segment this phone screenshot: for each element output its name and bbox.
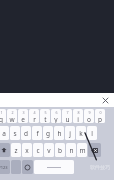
staticText: f <box>36 129 39 138</box>
staticText: h <box>57 129 62 138</box>
button[interactable]: ?123 <box>0 160 10 174</box>
staticText: 8 <box>77 110 80 115</box>
button[interactable]: Space <box>34 160 74 174</box>
button[interactable]: n <box>66 143 76 157</box>
staticText: j <box>69 129 71 138</box>
staticText: 4 <box>33 110 36 115</box>
button[interactable]: 8 <box>73 109 83 123</box>
staticText: q <box>0 115 3 123</box>
staticText: c <box>36 146 40 155</box>
button[interactable]: Backspace <box>88 143 101 157</box>
staticText: o <box>87 115 91 123</box>
staticText: m <box>79 146 86 155</box>
button[interactable]: Shift <box>0 143 10 157</box>
button[interactable]: l <box>87 126 97 140</box>
button[interactable]: 6 <box>51 109 61 123</box>
button[interactable]: b <box>55 143 65 157</box>
staticText: s <box>13 129 17 138</box>
button[interactable]: Close <box>100 95 111 106</box>
button[interactable]: z <box>11 143 21 157</box>
staticText: r <box>33 115 36 123</box>
button[interactable]: m <box>77 143 87 157</box>
staticText: a <box>2 129 6 138</box>
button[interactable]: d <box>21 126 31 140</box>
button[interactable]: k <box>76 126 86 140</box>
staticText: 6 <box>55 110 58 115</box>
button[interactable]: j <box>65 126 75 140</box>
staticText: d <box>24 129 28 138</box>
staticText: 9 <box>88 110 91 115</box>
button[interactable]: f <box>32 126 42 140</box>
button[interactable]: a <box>0 126 9 140</box>
staticText: 1 <box>0 110 3 115</box>
button[interactable]: c <box>33 143 43 157</box>
button[interactable]: 0 <box>95 109 105 123</box>
button[interactable]: h <box>54 126 64 140</box>
button[interactable]: 7 <box>62 109 72 123</box>
staticText: t <box>44 115 47 123</box>
button[interactable]: 5 <box>40 109 50 123</box>
staticText: 7 <box>66 110 69 115</box>
button[interactable]: 9 <box>84 109 94 123</box>
staticText: ?123 <box>0 165 8 170</box>
button[interactable]: 1 <box>0 109 6 123</box>
staticText: x <box>25 146 29 155</box>
button[interactable]: 4 <box>29 109 39 123</box>
staticText: 2 <box>11 110 14 115</box>
staticText: 3 <box>22 110 25 115</box>
button[interactable]: s <box>10 126 20 140</box>
button[interactable]: Emoji <box>22 160 33 174</box>
staticText: z <box>14 146 18 155</box>
staticText: n <box>69 146 74 155</box>
staticText: w <box>9 115 15 123</box>
staticText: k <box>79 129 83 138</box>
staticText: g <box>46 129 50 138</box>
staticText: l <box>91 129 93 138</box>
staticText: p <box>98 115 102 123</box>
staticText: u <box>65 115 70 123</box>
staticText: b <box>58 146 62 155</box>
staticText: 0 <box>99 110 102 115</box>
button[interactable]: 2 <box>7 109 17 123</box>
staticText: v <box>47 146 51 155</box>
button[interactable]: g <box>43 126 53 140</box>
button[interactable]: 3 <box>18 109 28 123</box>
button[interactable]: x <box>22 143 32 157</box>
staticText: 5 <box>44 110 47 115</box>
staticText: e <box>21 115 25 123</box>
button[interactable]: v <box>44 143 54 157</box>
staticText: y <box>54 115 58 123</box>
staticText: i <box>77 115 79 123</box>
staticText: 软件技巧 <box>90 164 110 170</box>
